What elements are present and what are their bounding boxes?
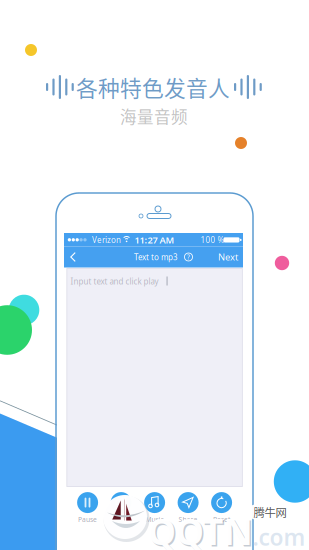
staticText: QQTN bbox=[149, 509, 254, 550]
button[interactable]: Pause bbox=[72, 491, 104, 525]
staticText: Verizon bbox=[92, 234, 121, 245]
staticText: 腾牛网 bbox=[253, 504, 286, 520]
button[interactable]: Music bbox=[139, 491, 171, 525]
staticText: 海量音频 bbox=[120, 104, 188, 128]
staticText: .com bbox=[252, 522, 305, 550]
staticText: ? bbox=[187, 253, 190, 261]
staticText: Next bbox=[218, 251, 238, 263]
staticText: Share bbox=[179, 515, 198, 524]
button[interactable]: Help bbox=[181, 249, 195, 265]
staticText: Reset bbox=[213, 515, 230, 524]
button[interactable]: Back bbox=[64, 246, 82, 267]
staticText: Sound bbox=[111, 515, 131, 524]
staticText: 100 % bbox=[200, 234, 224, 245]
button[interactable]: Share bbox=[172, 491, 204, 525]
staticText: 各种特色发音人 bbox=[76, 71, 230, 103]
button[interactable]: Sound bbox=[105, 491, 137, 525]
staticText: QQTN bbox=[147, 507, 252, 550]
staticText: Input text and click play bbox=[70, 276, 158, 287]
button[interactable]: Next bbox=[215, 246, 241, 267]
staticText: 11:27 AM bbox=[134, 234, 174, 246]
staticText: Text to mp3 bbox=[134, 252, 178, 262]
button[interactable]: Reset bbox=[206, 491, 238, 525]
staticText: Music bbox=[146, 515, 164, 524]
staticText: Pause bbox=[78, 515, 97, 524]
